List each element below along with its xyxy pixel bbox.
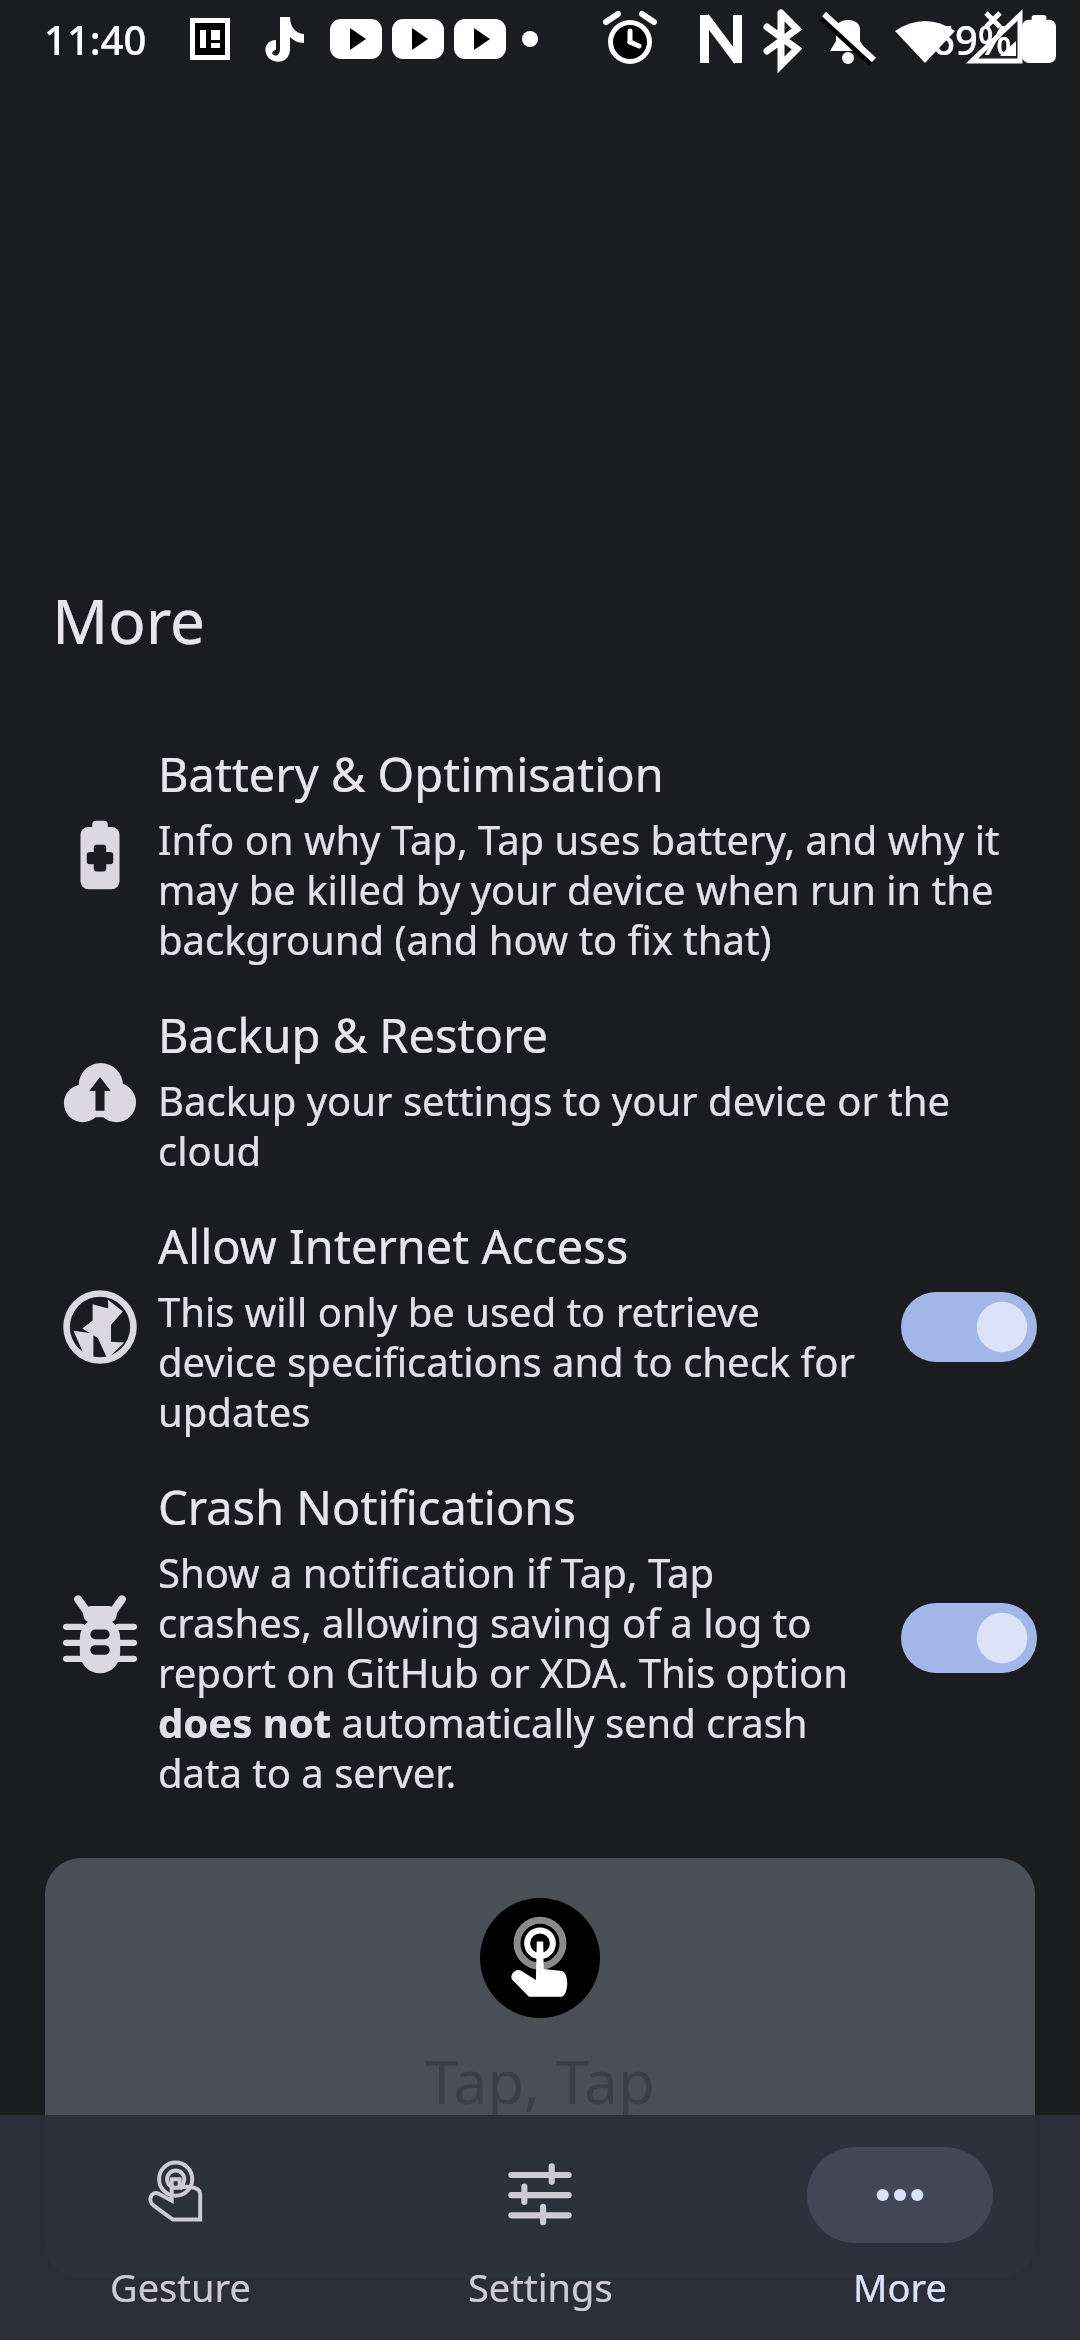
staticText: Settings: [468, 2261, 613, 2313]
staticText: Crash Notifications: [158, 1475, 576, 1539]
staticText: Backup & Restore: [158, 1003, 549, 1067]
button[interactable]: Battery & Optimisation: [0, 724, 1080, 985]
other: More: [864, 2159, 936, 2231]
button[interactable]: Toggle Allow Internet Access: [894, 1281, 1044, 1373]
staticText: More: [853, 2261, 947, 2313]
button[interactable]: Crash Notifications: [0, 1457, 1080, 1818]
staticText: Version 1.2: [441, 2132, 639, 2184]
staticText: 69%: [932, 12, 1012, 66]
staticText: More: [52, 578, 206, 662]
button[interactable]: Tap, Tap: [45, 1858, 1035, 2278]
button[interactable]: Backup & Restore: [0, 985, 1080, 1196]
staticText: Info on why Tap, Tap uses battery, and w…: [158, 812, 1028, 967]
button[interactable]: Settings: [360, 2115, 720, 2340]
staticText: Gesture: [110, 2261, 251, 2313]
button[interactable]: Allow Internet Access: [0, 1196, 1080, 1457]
staticText: Allow Internet Access: [158, 1214, 629, 1278]
staticText: Backup your settings to your device or t…: [158, 1073, 1028, 1178]
staticText: 11:40: [44, 12, 147, 66]
staticText: Created by Kieron Quinn: [321, 2194, 759, 2246]
other: Gesture: [144, 2159, 216, 2231]
other: Settings: [504, 2159, 576, 2231]
button[interactable]: More: [720, 2115, 1080, 2340]
button[interactable]: Gesture: [0, 2115, 360, 2340]
staticText: Tap, Tap: [425, 2040, 655, 2122]
button[interactable]: Toggle Crash Notifications: [894, 1592, 1044, 1684]
staticText: Battery & Optimisation: [158, 742, 664, 806]
staticText: Show a notification if Tap, Tap crashes,…: [158, 1545, 878, 1800]
staticText: This will only be used to retrieve devic…: [158, 1284, 878, 1439]
